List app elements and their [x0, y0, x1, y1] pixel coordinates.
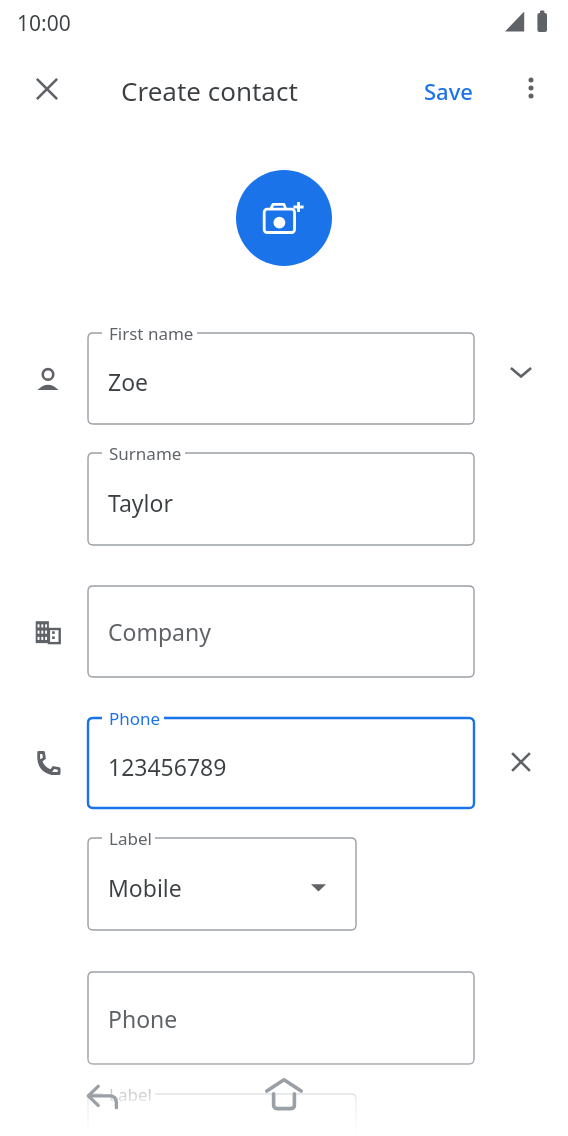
- button[interactable]: More options: [507, 64, 555, 112]
- button[interactable]: Clear phone: [497, 738, 545, 786]
- staticText: Phone: [108, 1003, 178, 1034]
- button[interactable]: Company: [88, 586, 474, 677]
- button[interactable]: Label: [88, 838, 356, 930]
- button[interactable]: Company: [22, 606, 74, 658]
- button[interactable]: Save: [412, 68, 485, 114]
- staticText: Create contact: [121, 73, 298, 108]
- button[interactable]: Expand name fields: [496, 347, 546, 397]
- staticText: Mobile: [108, 872, 182, 903]
- button[interactable]: Home: [257, 1068, 311, 1122]
- staticText: 123456789: [108, 751, 227, 782]
- staticText: 10:00: [17, 9, 71, 38]
- button[interactable]: Phone: [22, 737, 74, 789]
- button[interactable]: First name: [88, 333, 474, 424]
- button[interactable]: Phone: [88, 972, 474, 1064]
- staticText: Label: [109, 1083, 152, 1106]
- staticText: Label: [109, 827, 152, 850]
- button[interactable]: Phone: [88, 718, 474, 808]
- staticText: Zoe: [108, 366, 149, 397]
- button[interactable]: Surname: [88, 453, 474, 545]
- staticText: Surname: [109, 442, 182, 465]
- button[interactable]: Add photo: [236, 170, 332, 266]
- staticText: Save: [424, 76, 473, 106]
- staticText: Company: [108, 616, 211, 647]
- button[interactable]: Close: [22, 64, 72, 114]
- button[interactable]: Back: [78, 1070, 132, 1124]
- button[interactable]: Name: [22, 355, 74, 407]
- staticText: First name: [109, 322, 194, 345]
- staticText: Taylor: [108, 487, 173, 518]
- staticText: Phone: [109, 707, 161, 730]
- button[interactable]: Label: [88, 1094, 356, 1136]
